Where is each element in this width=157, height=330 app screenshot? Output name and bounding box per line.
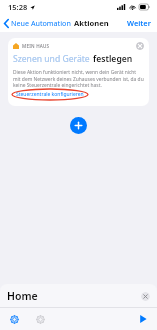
- staticText: Diese Aktion funktioniert nicht, wenn de…: [13, 69, 144, 88]
- staticText: MEIN HAUS: [22, 43, 50, 49]
- staticText: festlegen: [93, 53, 133, 65]
- staticText: Home: [7, 289, 38, 303]
- button[interactable]: Aktion entfernen: [136, 42, 144, 50]
- button[interactable]: MEIN HAUS: [8, 38, 149, 106]
- button[interactable]: Einstellungen: [34, 313, 46, 325]
- staticText: Neue Automation: [11, 18, 71, 28]
- button[interactable]: Informationen: [8, 313, 20, 325]
- button[interactable]: Neue Automation: [0, 15, 75, 31]
- button[interactable]: Weiter: [121, 15, 157, 31]
- staticText: Szenen und Geräte: [13, 53, 90, 65]
- staticText: Weiter: [127, 18, 151, 28]
- staticText: 15:28: [8, 2, 28, 12]
- button[interactable]: Aktion hinzufügen: [70, 117, 87, 134]
- button[interactable]: Schließen: [141, 292, 150, 301]
- button[interactable]: Ausführen: [137, 313, 149, 325]
- staticText: Aktionen: [74, 18, 109, 28]
- staticText: Steuerzentrale konfigurieren: [16, 91, 84, 98]
- button[interactable]: Steuerzentrale konfigurieren: [13, 89, 87, 100]
